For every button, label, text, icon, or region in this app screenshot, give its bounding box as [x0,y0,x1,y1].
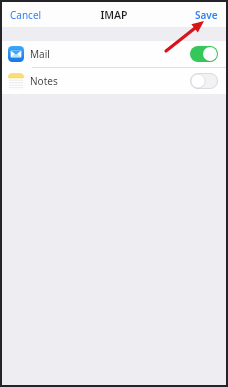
staticText: Notes [30,74,58,88]
button[interactable]: Mail [2,41,226,67]
staticText: Save [195,8,218,22]
staticText: Mail [30,47,50,61]
button[interactable]: Notes [2,68,226,94]
button[interactable]: Toggle off [190,73,218,89]
staticText: Cancel [10,8,42,22]
button[interactable]: Toggle on [190,46,218,62]
button[interactable]: Save [187,4,226,26]
button[interactable]: Cancel [2,4,50,26]
staticText: IMAP [100,8,128,22]
